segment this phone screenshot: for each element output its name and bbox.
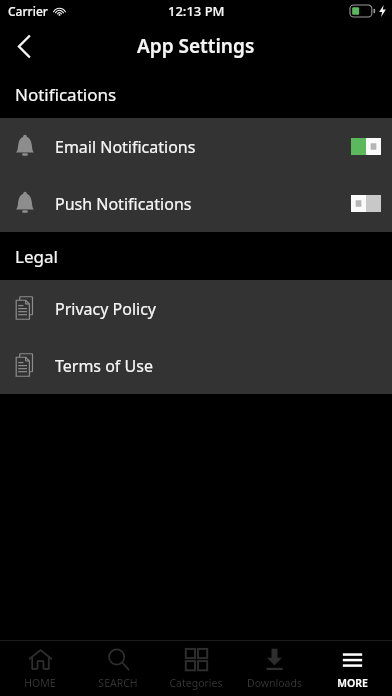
staticText: Legal	[15, 245, 58, 268]
button[interactable]: Privacy Policy	[0, 280, 392, 337]
staticText: App Settings	[137, 33, 255, 59]
staticText: Email Notifications	[55, 136, 196, 158]
button[interactable]: HOME	[2, 641, 78, 696]
staticText: MORE	[337, 676, 368, 690]
staticText: Notifications	[15, 83, 117, 106]
button[interactable]: Push Notifications off	[351, 195, 381, 212]
button[interactable]: Terms of Use	[0, 337, 392, 394]
staticText: Carrier	[8, 3, 48, 19]
staticText: Categories	[169, 676, 223, 690]
staticText: Privacy Policy	[55, 298, 156, 320]
button[interactable]: Email Notifications on	[351, 138, 381, 155]
button[interactable]: Downloads	[236, 641, 312, 696]
button[interactable]: Categories	[158, 641, 234, 696]
staticText: Downloads	[247, 676, 302, 690]
staticText: Terms of Use	[55, 355, 153, 377]
button[interactable]: Push Notifications	[0, 175, 392, 232]
staticText: Push Notifications	[55, 193, 192, 215]
staticText: HOME	[24, 676, 56, 690]
button[interactable]: Back	[0, 22, 48, 70]
button[interactable]: Email Notifications	[0, 118, 392, 175]
button[interactable]: MORE	[314, 641, 390, 696]
staticText: SEARCH	[98, 676, 138, 690]
button[interactable]: SEARCH	[80, 641, 156, 696]
staticText: 12:13 PM	[168, 2, 225, 20]
